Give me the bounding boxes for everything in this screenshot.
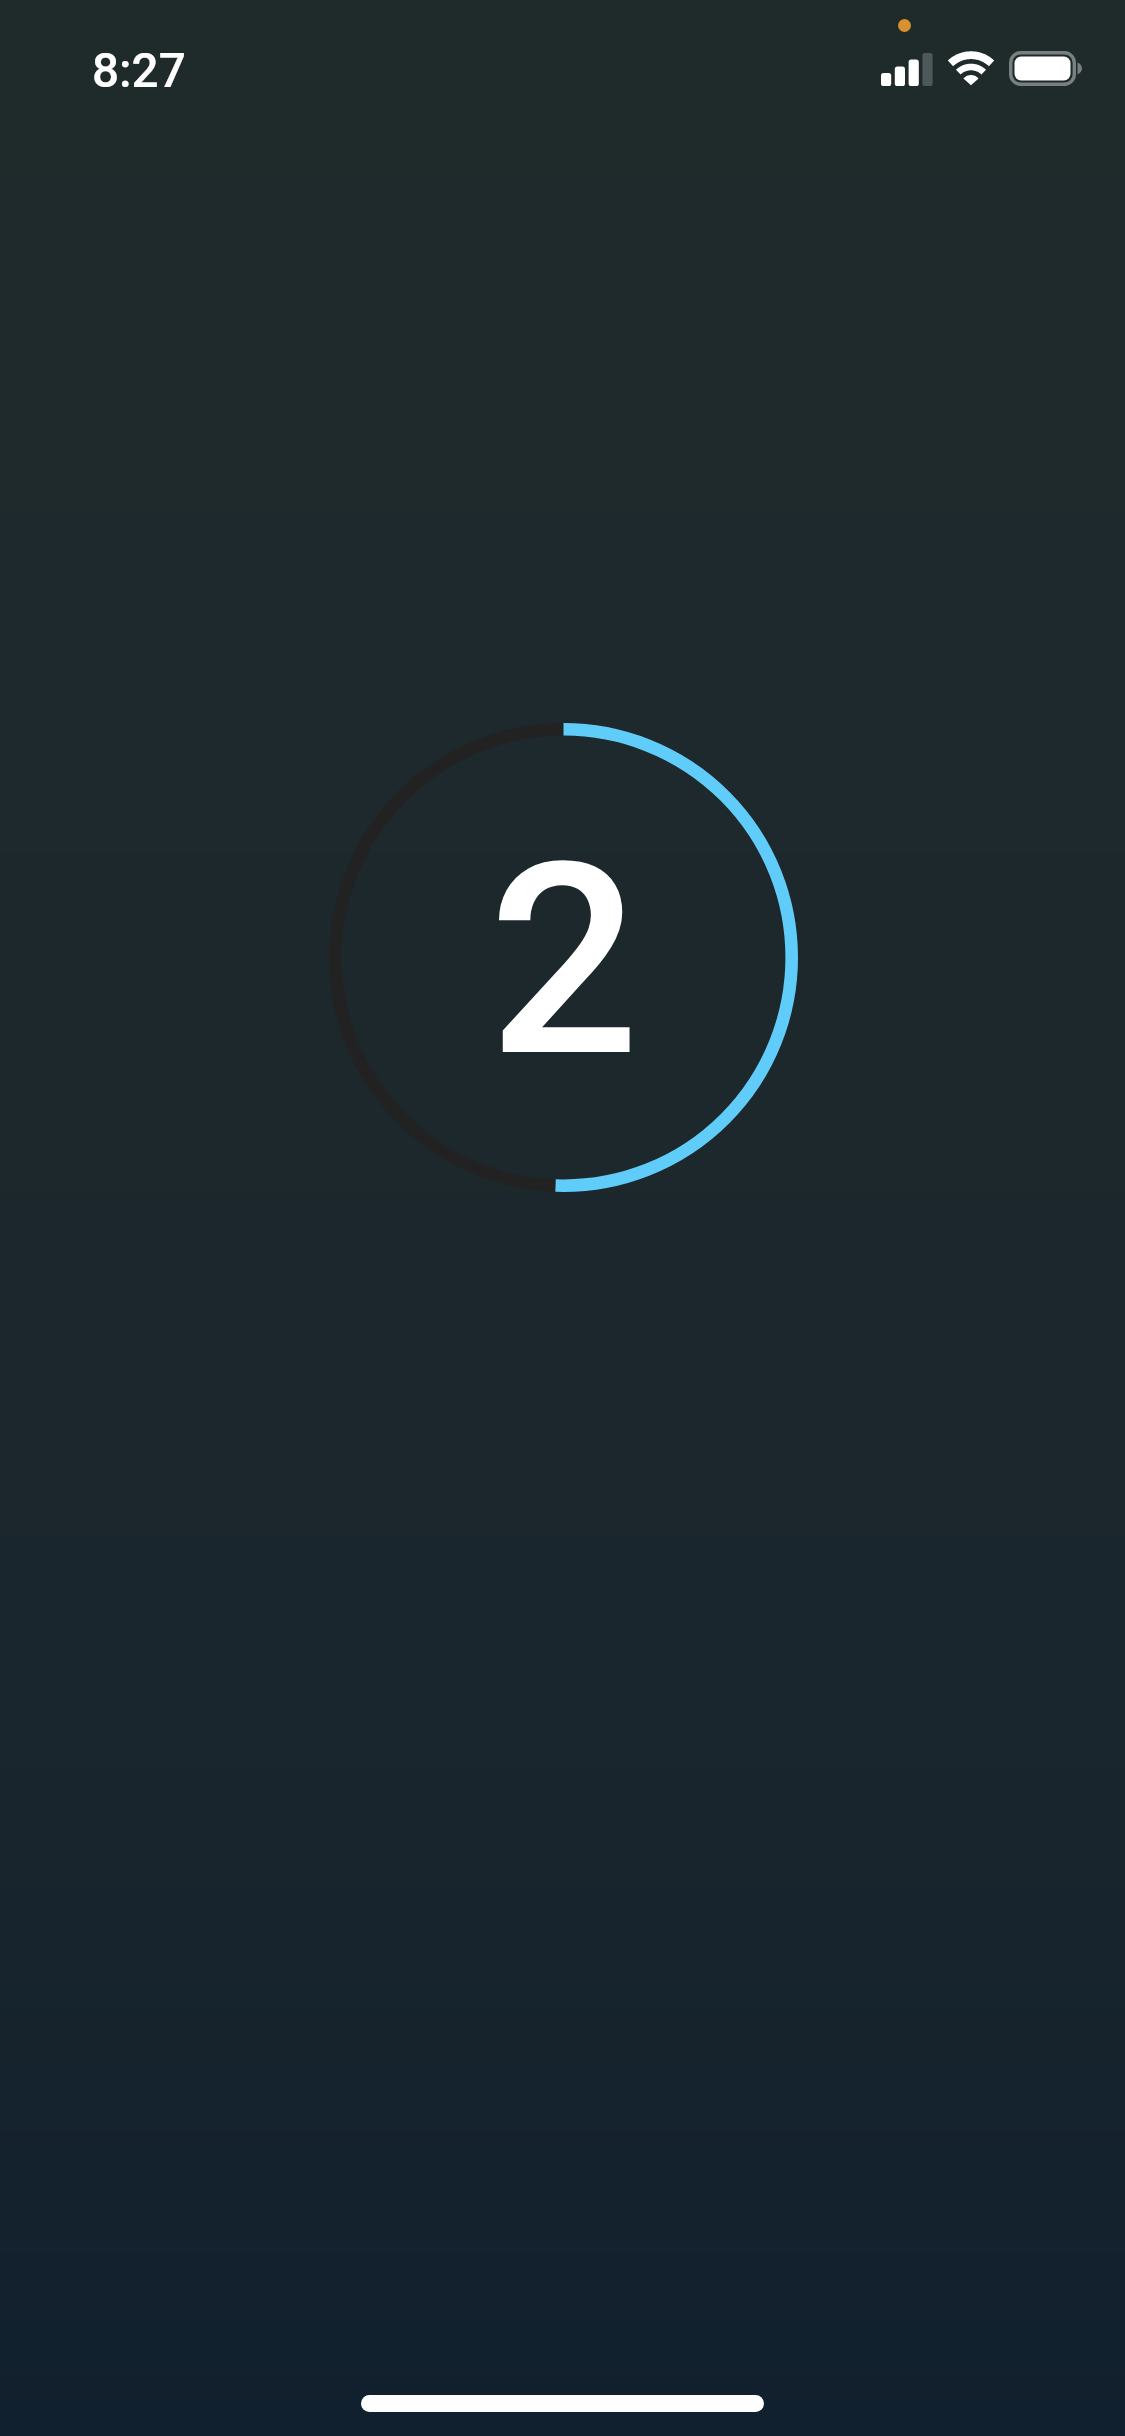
button[interactable]: Countdown, 2 seconds remaining: [329, 723, 798, 1192]
staticText: 2: [488, 805, 640, 1117]
other: Cellular signal: [881, 52, 934, 86]
other: Wi-Fi: [947, 50, 995, 87]
staticText: 8:27: [92, 43, 186, 99]
other: Battery full: [1009, 51, 1085, 86]
other: Microphone in use: [898, 19, 911, 32]
